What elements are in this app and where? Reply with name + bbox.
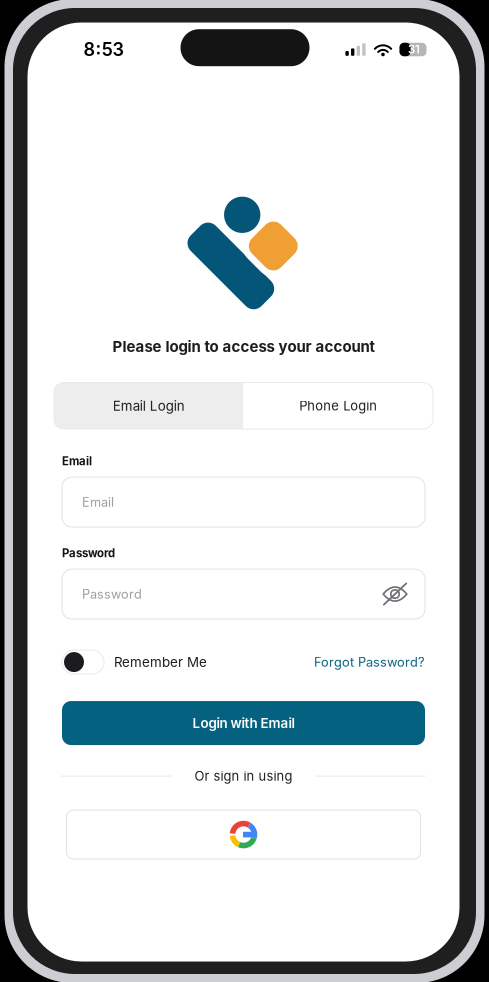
staticText: 31 (408, 43, 420, 56)
staticText: Email (82, 494, 114, 510)
button[interactable]: Remember Me (62, 649, 207, 675)
staticText: Password (82, 586, 142, 602)
button[interactable]: Sign in with Google (66, 810, 420, 859)
staticText: Email Login (113, 398, 185, 414)
staticText: Phone Login (299, 398, 377, 414)
staticText: Remember Me (114, 654, 207, 670)
button[interactable]: Show password (382, 582, 408, 606)
staticText: Email (62, 454, 92, 468)
button[interactable]: Forgot Password? (314, 649, 425, 675)
button[interactable]: Login with Email (62, 701, 425, 745)
staticText: 8:53 (83, 39, 123, 60)
button[interactable]: Phone Login (243, 383, 433, 429)
button[interactable]: Email Login (54, 383, 243, 429)
staticText: Forgot Password? (314, 654, 425, 670)
staticText: Or sign in using (194, 768, 292, 784)
staticText: Please login to access your account (112, 337, 374, 356)
staticText: Login with Email (192, 715, 294, 731)
staticText: Password (62, 546, 115, 560)
